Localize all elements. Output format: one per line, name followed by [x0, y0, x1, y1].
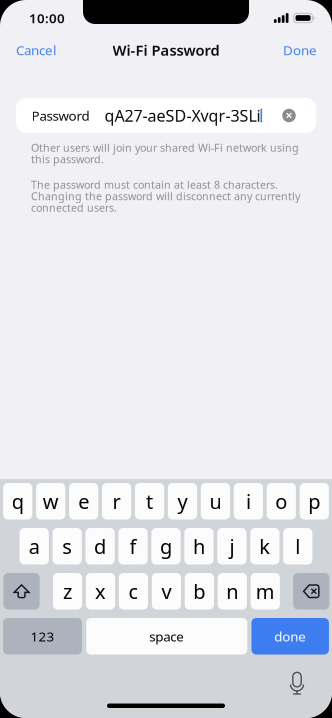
staticText: space — [149, 627, 184, 645]
button[interactable]: Clear text — [275, 98, 302, 133]
button[interactable]: a — [20, 528, 49, 564]
button[interactable]: g — [151, 528, 181, 564]
staticText: b — [193, 578, 205, 605]
button[interactable]: b — [185, 573, 214, 609]
button[interactable]: Cancel — [0, 34, 72, 66]
button[interactable]: k — [250, 528, 279, 564]
staticText: a — [29, 533, 40, 560]
staticText: r — [113, 488, 121, 515]
staticText: q — [12, 488, 24, 515]
staticText: y — [177, 488, 187, 515]
staticText: Wi-Fi Password — [112, 40, 219, 60]
button[interactable]: Delete — [293, 573, 329, 609]
staticText: 123 — [31, 627, 55, 645]
button[interactable]: f — [118, 528, 148, 564]
button[interactable]: t — [135, 483, 164, 519]
staticText: s — [62, 533, 72, 560]
button[interactable]: e — [69, 483, 98, 519]
button[interactable]: q — [3, 483, 32, 519]
staticText: c — [128, 578, 138, 605]
staticText: t — [146, 488, 153, 515]
button[interactable]: i — [234, 483, 263, 519]
button[interactable]: w — [36, 483, 65, 519]
staticText: done — [274, 627, 306, 645]
staticText: l — [295, 533, 300, 560]
button[interactable]: done — [251, 618, 329, 654]
staticText: 10:00 — [29, 9, 65, 27]
button[interactable]: c — [119, 573, 148, 609]
staticText: f — [130, 533, 137, 560]
staticText: qA27-aeSD-Xvqr-3SLi — [104, 105, 260, 126]
button[interactable]: o — [267, 483, 296, 519]
button[interactable]: j — [217, 528, 246, 564]
button[interactable]: z — [53, 573, 82, 609]
staticText: n — [226, 578, 238, 605]
button[interactable]: 123 — [3, 618, 82, 654]
button[interactable]: m — [251, 573, 280, 609]
button[interactable]: x — [86, 573, 115, 609]
staticText: u — [209, 488, 221, 515]
staticText: j — [229, 533, 234, 560]
staticText: i — [246, 488, 251, 515]
button[interactable]: n — [218, 573, 247, 609]
button[interactable]: v — [152, 573, 181, 609]
staticText: Changing the password will disconnect an… — [31, 189, 300, 203]
staticText: o — [275, 488, 287, 515]
button[interactable]: Shift — [3, 573, 40, 609]
button[interactable]: space — [86, 618, 247, 654]
staticText: Done — [283, 41, 317, 59]
button[interactable]: Dictate — [282, 670, 312, 696]
staticText: Password — [31, 107, 89, 124]
staticText: connected users. — [31, 200, 117, 215]
staticText: w — [43, 488, 59, 515]
staticText: h — [193, 533, 205, 560]
staticText: e — [78, 488, 89, 515]
staticText: this password. — [31, 152, 104, 166]
button[interactable]: p — [300, 483, 329, 519]
button[interactable]: l — [283, 528, 312, 564]
staticText: Cancel — [16, 41, 56, 59]
button[interactable]: y — [168, 483, 197, 519]
button[interactable]: d — [85, 528, 115, 564]
staticText: z — [63, 578, 72, 605]
button[interactable]: r — [102, 483, 131, 519]
staticText: v — [161, 578, 171, 605]
button[interactable]: s — [53, 528, 82, 564]
staticText: x — [95, 578, 106, 605]
staticText: m — [256, 578, 275, 605]
staticText: d — [94, 533, 106, 560]
button[interactable]: Done — [268, 34, 332, 66]
staticText: The password must contain at least 8 cha… — [31, 177, 278, 192]
button[interactable]: h — [184, 528, 214, 564]
button[interactable]: u — [201, 483, 230, 519]
staticText: g — [160, 533, 172, 560]
staticText: k — [259, 533, 270, 560]
staticText: p — [308, 488, 320, 515]
staticText: Other users will join your shared Wi-Fi … — [31, 140, 299, 155]
